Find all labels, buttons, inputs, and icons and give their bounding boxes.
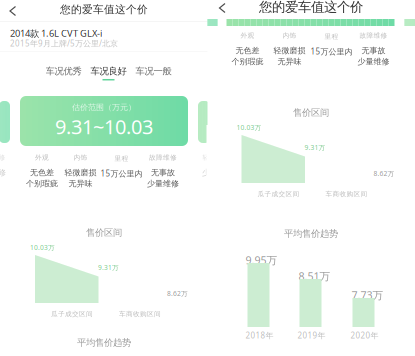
staticText: 轻 — [202, 153, 209, 162]
staticText: 瓜子成交区间 — [51, 310, 93, 318]
staticText: 9.95万 — [245, 253, 277, 267]
staticText: 个别瑕疵 — [26, 179, 58, 188]
staticText: 您的爱车值这个价 — [60, 3, 148, 16]
staticText: 里程 — [114, 154, 128, 163]
staticText: 10.03万 — [30, 243, 55, 252]
staticText: 2014款 1.6L CVT GLX-i — [10, 27, 102, 39]
staticText: 您的爱车值这个价 — [259, 0, 363, 15]
staticText: 车商收购区间 — [325, 190, 367, 198]
staticText: 10.03万 — [236, 123, 261, 132]
staticText: 外观 — [35, 153, 49, 162]
staticText: 车况优秀 — [45, 65, 81, 77]
staticText: 无异味 — [68, 179, 92, 188]
staticText: 9.31万 — [98, 263, 119, 272]
staticText: 少量维修 — [147, 179, 179, 188]
staticText: 轻微磨损 — [273, 46, 305, 55]
staticText: 8.62万 — [373, 169, 394, 178]
staticText: 8.51万 — [298, 269, 330, 283]
staticText: 里程 — [324, 32, 338, 41]
staticText: 9.31万 — [304, 143, 325, 152]
staticText: 车况一般 — [135, 65, 171, 77]
staticText: 7.73万 — [351, 288, 383, 302]
staticText: 车况良好 — [90, 65, 126, 77]
staticText: 瓜子成交区间 — [257, 190, 299, 198]
staticText: 15万公里内 — [310, 46, 352, 57]
staticText: 无事故 — [151, 168, 175, 177]
staticText: 故障维修 — [149, 153, 177, 162]
staticText: 车商收购区间 — [119, 310, 161, 318]
staticText: 内饰 — [73, 153, 87, 162]
staticText: 少量维修 — [357, 57, 389, 66]
staticText: 估价范围（万元） — [72, 102, 136, 112]
staticText: 故障维修 — [359, 31, 387, 40]
staticText: 内饰 — [282, 31, 296, 40]
staticText: 2018年 — [245, 330, 273, 341]
button[interactable]: Back — [3, 1, 23, 21]
staticText: 修 — [0, 153, 5, 162]
staticText: 少 — [202, 168, 210, 177]
button[interactable]: 车况优秀 — [45, 65, 82, 81]
staticText: 个别瑕疵 — [231, 57, 263, 66]
staticText: 售价区间 — [86, 227, 122, 238]
button[interactable]: 车况一般 — [135, 65, 172, 81]
staticText: 2019年 — [297, 330, 325, 341]
button[interactable]: Back — [211, 0, 233, 19]
staticText: 无事故 — [361, 46, 385, 55]
staticText: 15万公里内 — [100, 168, 142, 179]
staticText: 无色差 — [30, 168, 54, 177]
staticText: 修 — [0, 168, 6, 177]
staticText: 无色差 — [235, 46, 259, 55]
staticText: 平均售价趋势 — [77, 337, 131, 348]
staticText: 外观 — [240, 31, 254, 40]
button[interactable]: 车况良好 — [90, 65, 127, 81]
staticText: 8.62万 — [167, 289, 188, 298]
staticText: 2020年 — [350, 330, 378, 341]
staticText: 2015年9月上牌/5万公里/北京 — [10, 38, 118, 49]
staticText: 无异味 — [277, 57, 301, 66]
staticText: 售价区间 — [293, 107, 329, 118]
staticText: 9.31~10.03 — [55, 113, 153, 140]
staticText: 轻微磨损 — [64, 168, 96, 177]
staticText: 平均售价趋势 — [284, 228, 338, 239]
